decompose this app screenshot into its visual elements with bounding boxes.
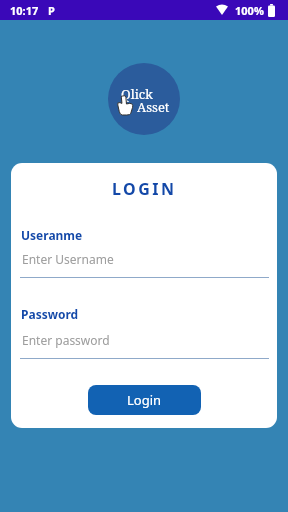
staticText: Useranme <box>21 227 83 243</box>
staticText: P <box>48 3 55 18</box>
staticText: LOGIN <box>112 178 177 200</box>
button[interactable]: Enter password <box>20 325 268 355</box>
staticText: Qlick <box>121 85 153 103</box>
button[interactable]: Login <box>88 385 201 415</box>
staticText: Enter password <box>22 332 110 348</box>
button[interactable]: Enter Username <box>20 244 268 274</box>
staticText: Enter Username <box>22 251 114 267</box>
staticText: 10:17 <box>10 3 39 18</box>
staticText: Asset <box>137 98 170 116</box>
staticText: Password <box>21 306 79 322</box>
staticText: Login <box>127 391 162 409</box>
staticText: 100% <box>235 3 264 18</box>
